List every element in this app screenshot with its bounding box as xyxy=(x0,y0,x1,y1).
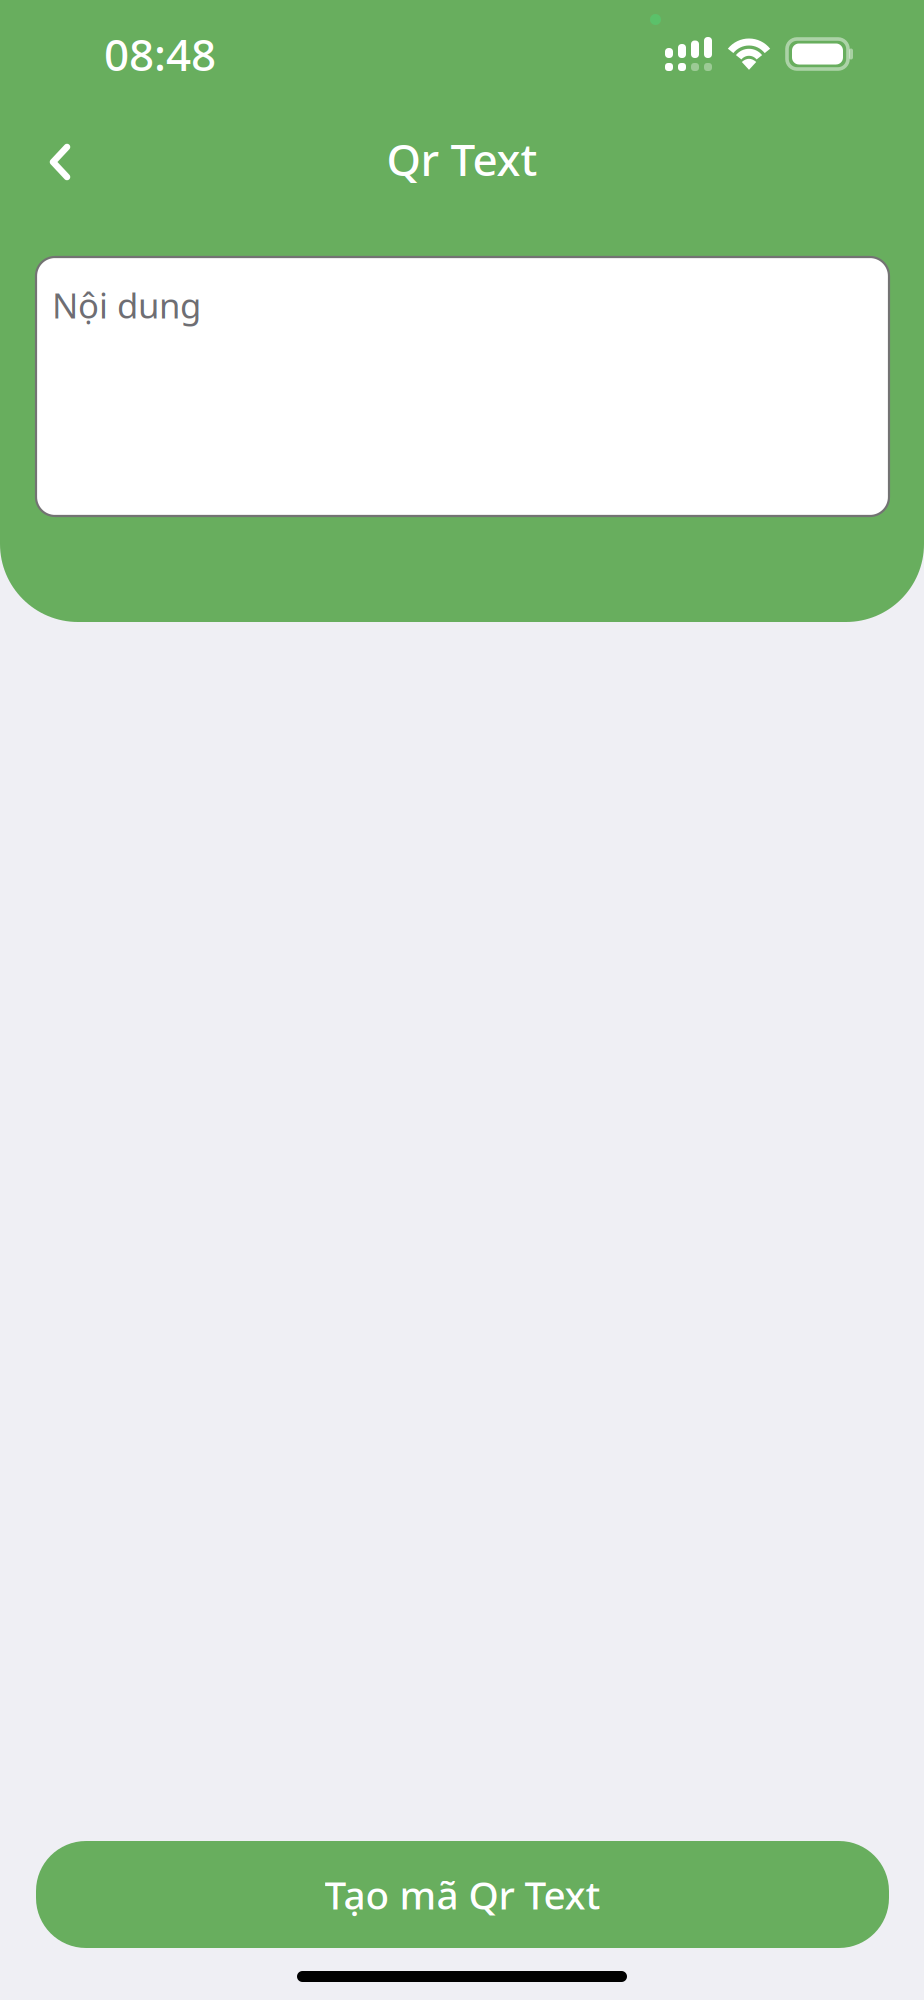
staticText: 08:48 xyxy=(104,25,216,83)
staticText: Qr Text xyxy=(386,130,537,188)
button[interactable]: Back xyxy=(17,116,103,202)
staticText: Tạo mã Qr Text xyxy=(324,1869,600,1920)
button[interactable]: Tạo mã Qr Text xyxy=(36,1841,889,1948)
staticText: Nội dung xyxy=(52,282,201,328)
button[interactable]: Nội dung xyxy=(36,257,889,516)
